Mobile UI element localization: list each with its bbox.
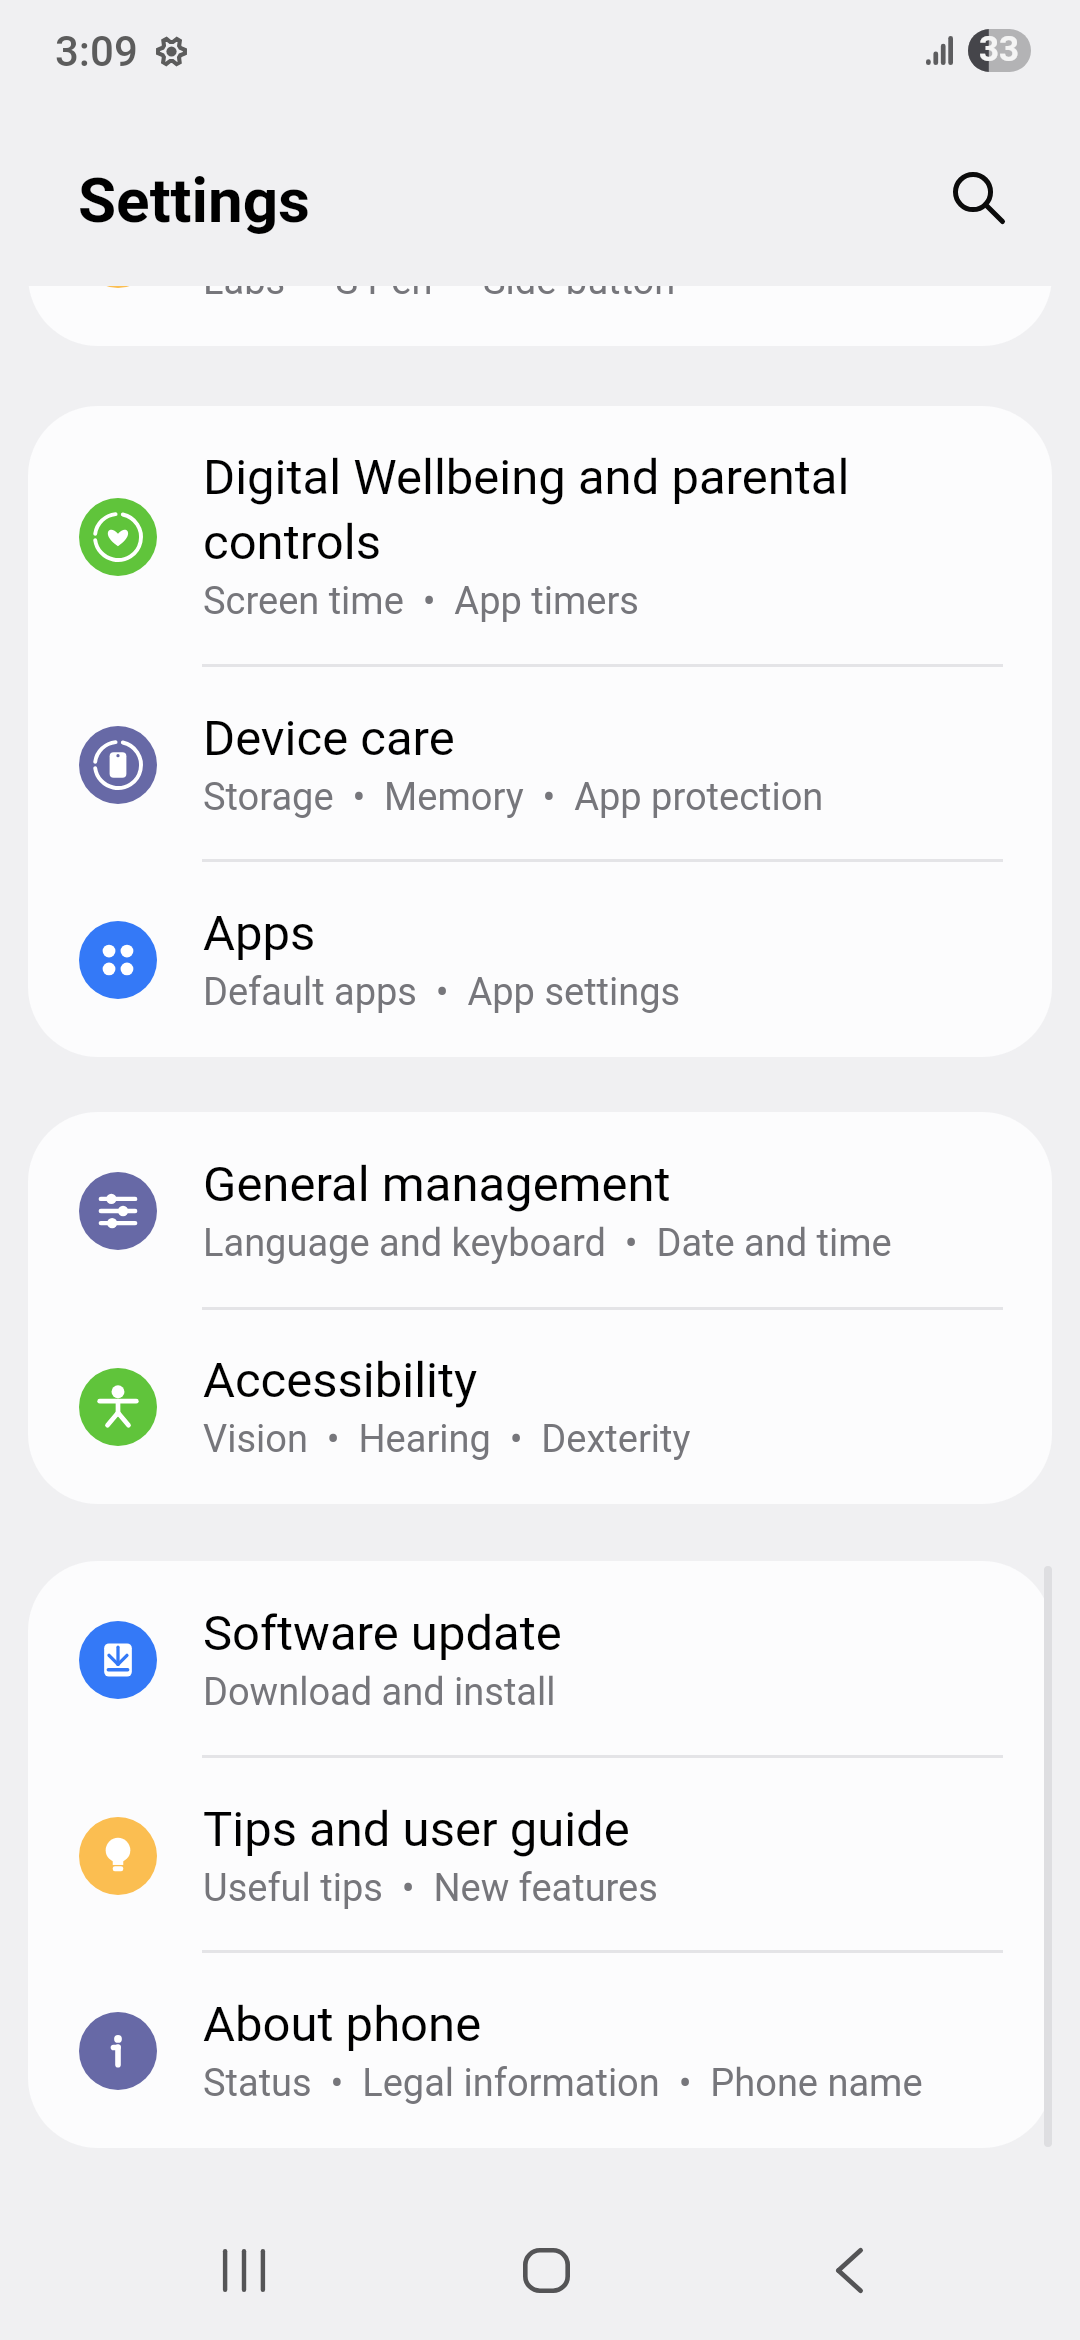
staticText: Download and install (203, 1670, 556, 1715)
staticText: Apps (203, 905, 316, 962)
staticText: Vision • Hearing • Dexterity (203, 1417, 691, 1462)
button[interactable]: Device care (28, 667, 1052, 862)
staticText: Modes and Routines (203, 194, 650, 251)
staticText: 3:09 (55, 27, 138, 76)
button[interactable]: About phone (28, 1953, 1052, 2148)
staticText: Language and keyboard • Date and time (203, 1221, 892, 1266)
button[interactable]: General management (28, 1112, 1052, 1310)
staticText: Digital Wellbeing and parental controls (203, 449, 850, 571)
staticText: Settings (78, 164, 311, 237)
button[interactable]: Apps (28, 862, 1052, 1057)
staticText: About phone (203, 1996, 482, 2053)
button[interactable]: Recent apps (169, 2201, 319, 2340)
staticText: General management (203, 1156, 671, 1213)
button[interactable]: Modes and Routines (28, 151, 1052, 346)
button[interactable]: Tips and user guide (28, 1758, 1052, 1953)
staticText: Storage • Memory • App protection (203, 775, 824, 820)
button[interactable]: Accessibility (28, 1310, 1052, 1504)
button[interactable]: Back (774, 2201, 924, 2340)
staticText: Default apps • App settings (203, 970, 681, 1015)
staticText: Screen time • App timers (203, 579, 639, 624)
staticText: Device care (203, 710, 455, 767)
staticText: Labs • S Pen • Side button (203, 259, 676, 304)
button[interactable]: Home (471, 2201, 621, 2340)
staticText: Software update (203, 1605, 562, 1662)
staticText: Accessibility (203, 1352, 478, 1409)
button[interactable]: Search (920, 140, 1040, 260)
staticText: Status • Legal information • Phone name (203, 2061, 923, 2106)
button[interactable]: Digital Wellbeing and parental controls (28, 406, 1052, 667)
staticText: 33 (979, 29, 1020, 70)
button[interactable]: Software update (28, 1561, 1052, 1758)
staticText: Tips and user guide (203, 1801, 630, 1858)
staticText: Useful tips • New features (203, 1866, 658, 1911)
